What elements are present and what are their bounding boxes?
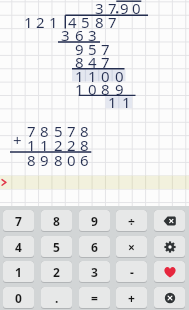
staticText: 7 bbox=[108, 12, 117, 32]
staticText: 1 bbox=[88, 66, 97, 86]
staticText: 1 bbox=[40, 135, 49, 155]
button[interactable]: 7 bbox=[3, 210, 34, 232]
staticText: = bbox=[91, 290, 98, 306]
staticText: 0 bbox=[15, 290, 22, 306]
staticText: 5 bbox=[54, 121, 63, 141]
staticText: 7 bbox=[101, 39, 110, 59]
staticText: 2 bbox=[67, 135, 76, 155]
button[interactable]: = bbox=[79, 287, 110, 309]
staticText: 8 bbox=[54, 150, 63, 170]
staticText: 1 bbox=[49, 12, 58, 32]
staticText: 8 bbox=[95, 12, 104, 32]
staticText: 9 bbox=[115, 79, 124, 99]
staticText: 1 bbox=[24, 12, 33, 32]
button[interactable] bbox=[154, 210, 185, 232]
staticText: 7 bbox=[15, 213, 22, 229]
staticText: 7 bbox=[67, 121, 76, 141]
button[interactable]: 3 bbox=[79, 261, 110, 283]
staticText: 7 bbox=[101, 52, 110, 72]
staticText: 1 bbox=[75, 66, 84, 86]
staticText: 1 bbox=[122, 92, 131, 112]
staticText: 8 bbox=[40, 121, 49, 141]
staticText: 3 bbox=[95, 0, 104, 18]
button[interactable]: 1 bbox=[3, 261, 34, 283]
staticText: 8 bbox=[80, 135, 89, 155]
staticText: 8 bbox=[75, 52, 84, 72]
button[interactable]: 5 bbox=[41, 236, 72, 258]
button[interactable]: 2 bbox=[41, 261, 72, 283]
staticText: 4 bbox=[88, 52, 97, 72]
staticText: 1 bbox=[27, 135, 36, 155]
staticText: 7 bbox=[108, 0, 117, 18]
staticText: 5 bbox=[53, 239, 60, 255]
staticText: 9 bbox=[40, 150, 49, 170]
staticText: 0 bbox=[67, 150, 76, 170]
staticText: 6 bbox=[75, 25, 84, 45]
staticText: 0 bbox=[132, 0, 141, 18]
staticText: 7 bbox=[27, 121, 36, 141]
button[interactable]: 4 bbox=[3, 236, 34, 258]
button[interactable]: ÷ bbox=[116, 210, 147, 232]
staticText: 6 bbox=[80, 150, 89, 170]
staticText: 9 bbox=[75, 39, 84, 59]
staticText: 0 bbox=[115, 66, 124, 86]
button[interactable]: 0 bbox=[3, 287, 34, 309]
button[interactable] bbox=[154, 287, 185, 309]
staticText: × bbox=[128, 239, 135, 255]
staticText: 5 bbox=[88, 39, 97, 59]
staticText: 6 bbox=[91, 239, 98, 255]
staticText: 1 bbox=[75, 79, 84, 99]
staticText: 8 bbox=[80, 121, 89, 141]
staticText: 2 bbox=[53, 264, 60, 280]
staticText: 1 bbox=[15, 264, 22, 280]
staticText: 5 bbox=[81, 12, 90, 32]
button[interactable]: 6 bbox=[79, 236, 110, 258]
staticText: - bbox=[130, 264, 134, 280]
staticText: 0 bbox=[101, 66, 110, 86]
button[interactable]: + bbox=[116, 287, 147, 309]
button[interactable]: 9 bbox=[79, 210, 110, 232]
staticText: + bbox=[128, 290, 135, 306]
staticText: 3 bbox=[88, 25, 97, 45]
staticText: 9 bbox=[91, 213, 98, 229]
staticText: 8 bbox=[101, 79, 110, 99]
staticText: 2 bbox=[54, 135, 63, 155]
staticText: + bbox=[13, 130, 22, 150]
staticText: ÷ bbox=[128, 213, 135, 229]
button[interactable] bbox=[154, 236, 185, 258]
button[interactable]: × bbox=[116, 236, 147, 258]
staticText: 9 bbox=[120, 0, 129, 18]
button[interactable] bbox=[154, 261, 185, 283]
staticText: 3 bbox=[61, 25, 70, 45]
staticText: 0 bbox=[88, 79, 97, 99]
staticText: 2 bbox=[36, 12, 45, 32]
staticText: 1 bbox=[108, 92, 117, 112]
button[interactable]: 8 bbox=[41, 210, 72, 232]
staticText: 4 bbox=[15, 239, 22, 255]
staticText: 8 bbox=[27, 150, 36, 170]
button[interactable]: - bbox=[116, 261, 147, 283]
staticText: . bbox=[55, 290, 59, 306]
staticText: 3 bbox=[91, 264, 98, 280]
staticText: 8 bbox=[53, 213, 60, 229]
button[interactable]: . bbox=[41, 287, 72, 309]
staticText: 4 bbox=[68, 12, 77, 32]
